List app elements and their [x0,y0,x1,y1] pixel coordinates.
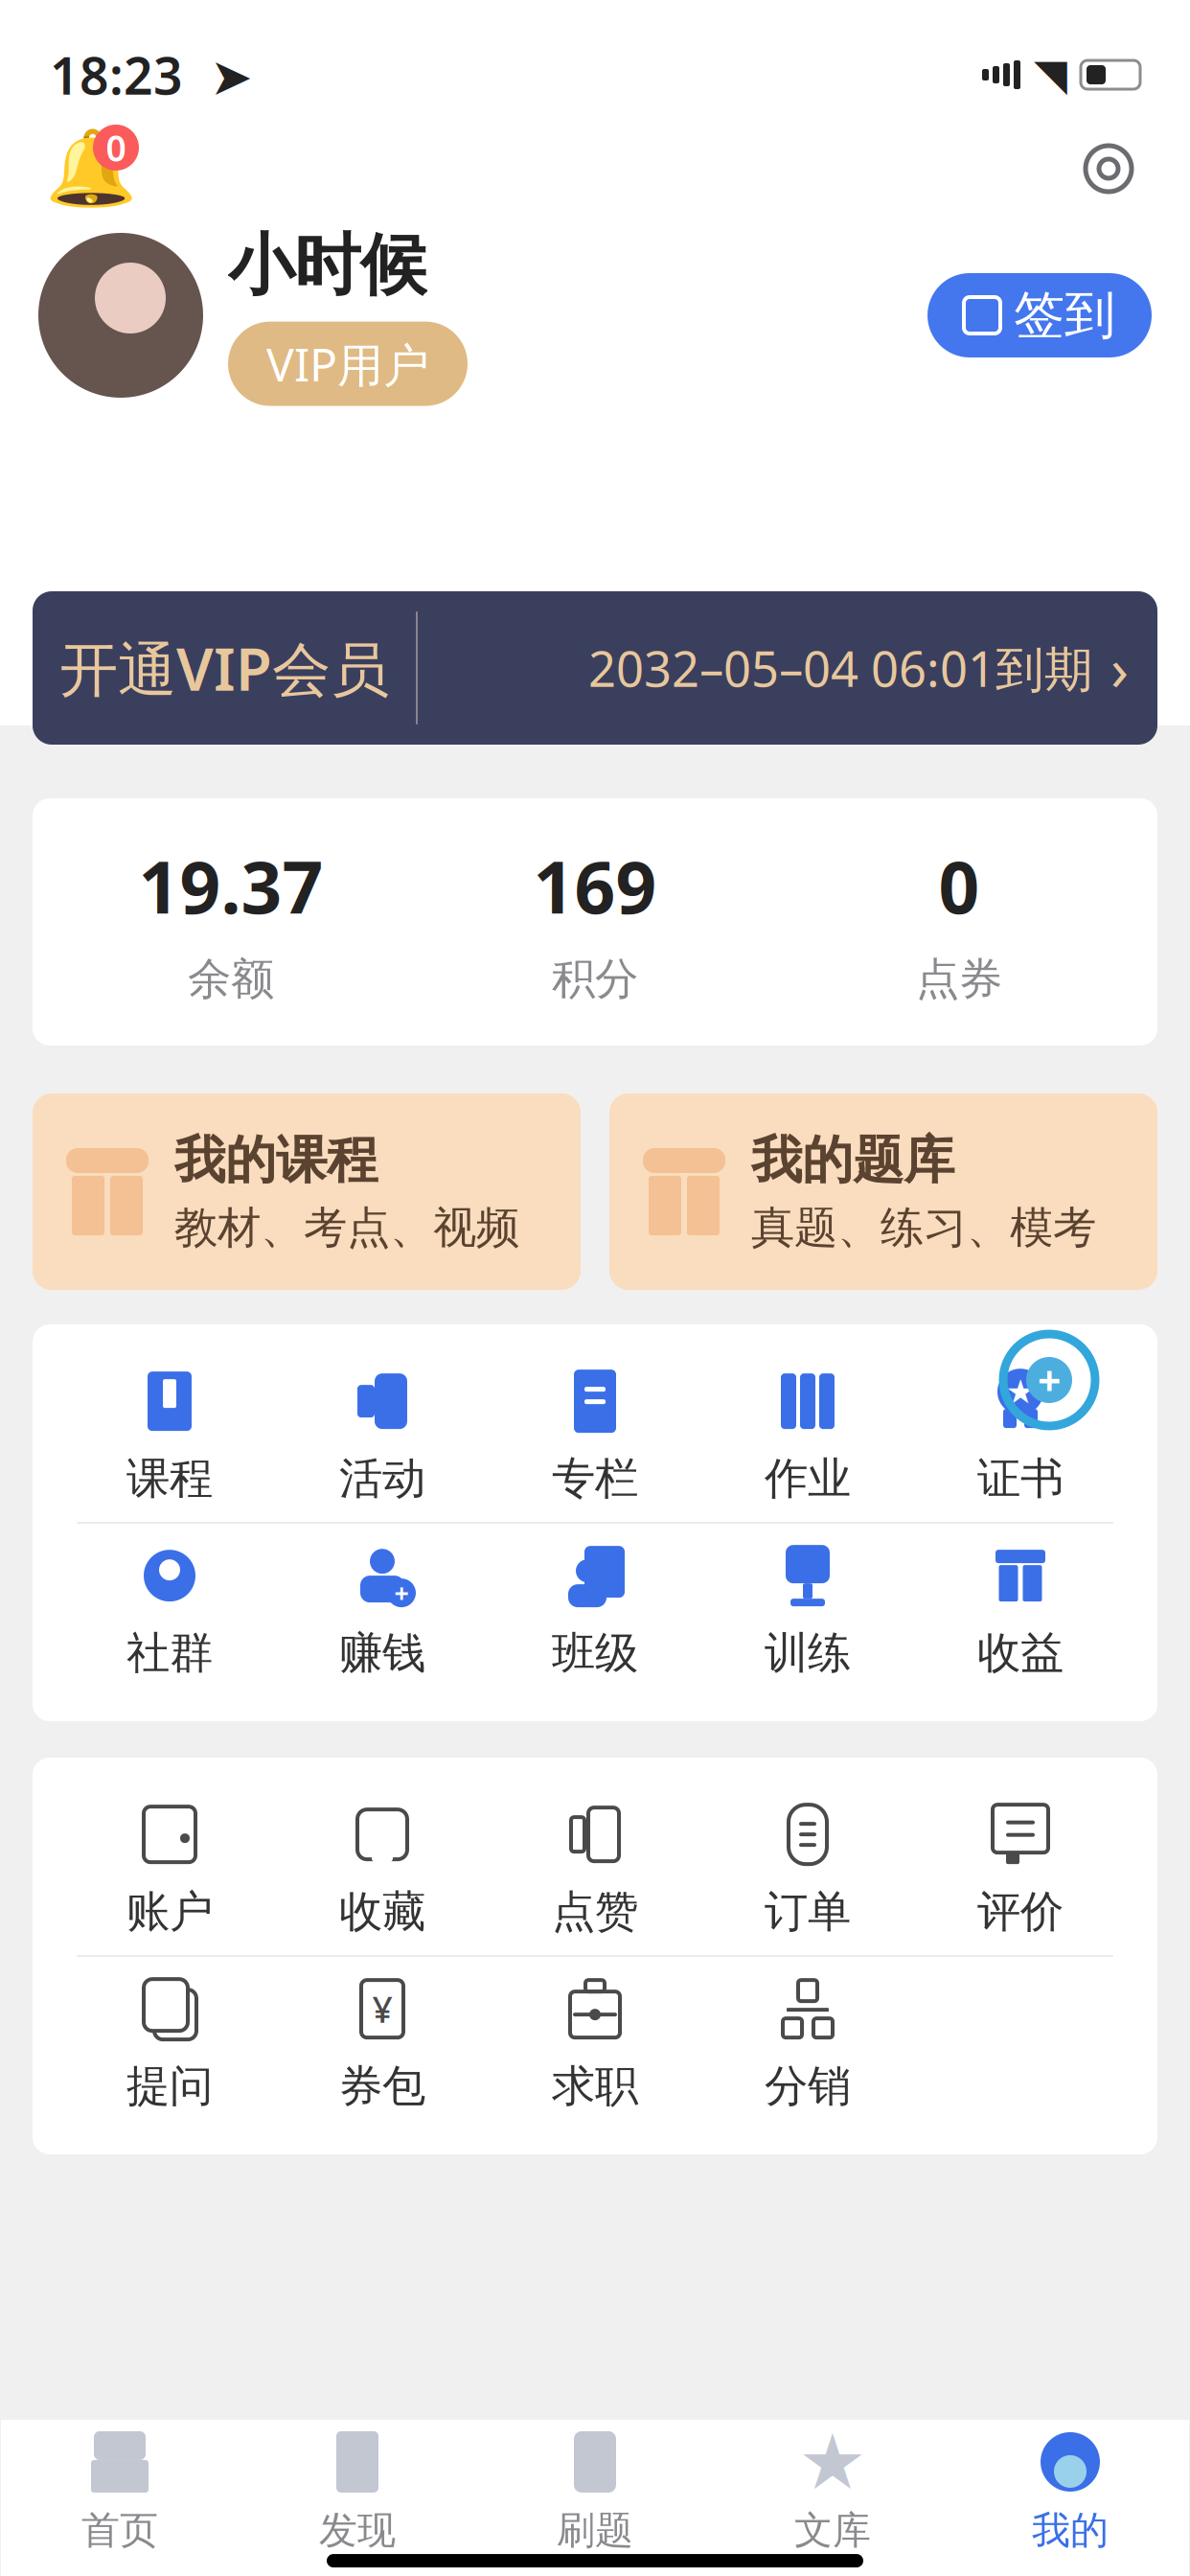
button[interactable]: 开通VIP会员 [33,591,1157,745]
button[interactable]: 0 [777,836,1141,1008]
button[interactable]: 首页 [1,2428,239,2554]
button[interactable]: 19.37 [49,836,413,1008]
button[interactable]: 发现 [239,2428,476,2554]
staticText: 专栏 [552,1452,638,1505]
staticText: ★ [1006,1373,1035,1410]
staticText: 文库 [794,2507,871,2554]
staticText: 活动 [339,1452,425,1505]
button[interactable]: 我的 [951,2428,1189,2554]
staticText: 提问 [126,2060,213,2113]
staticText: + [394,1576,409,1610]
button[interactable]: 刷题 [476,2428,714,2554]
staticText: 小时候 [228,225,426,306]
staticText: ◥ [1034,50,1067,99]
button[interactable]: 课程 [63,1349,276,1522]
button[interactable]: 我的题库 [609,1093,1157,1290]
staticText: 收藏 [339,1885,425,1939]
staticText: 点赞 [552,1885,638,1939]
button[interactable]: 训练 [701,1524,914,1696]
button[interactable]: 收益 [914,1524,1127,1696]
staticText: 余额 [188,952,274,1006]
button[interactable]: 账户 [63,1782,276,1955]
staticText: 订单 [765,1885,851,1939]
staticText: 训练 [765,1626,851,1680]
staticText: 分销 [765,2060,851,2113]
button[interactable]: 收藏 [276,1782,489,1955]
staticText: 我的课程 [174,1129,378,1192]
button[interactable]: ★ [714,2428,951,2554]
staticText: 签到 [1014,284,1115,347]
staticText: 券包 [339,2060,425,2113]
staticText: 教材、考点、视频 [174,1201,519,1255]
button[interactable]: Settings [1065,126,1152,212]
staticText: 我的题库 [751,1129,954,1192]
staticText: 我的 [1032,2507,1109,2554]
staticText: 班级 [552,1626,638,1680]
staticText: 0 [106,124,126,171]
staticText: 点券 [916,952,1002,1006]
button[interactable]: ★ [914,1349,1127,1522]
staticText: 开通VIP会员 [59,629,389,707]
staticText: 🔔 [45,126,137,211]
staticText: 发现 [319,2507,396,2554]
staticText: 真题、练习、模考 [751,1201,1096,1255]
button[interactable]: 订单 [701,1782,914,1955]
staticText: 评价 [977,1885,1064,1939]
button[interactable]: 我的课程 [33,1093,581,1290]
staticText: ¥ [372,1985,392,2033]
staticText: 作业 [765,1452,851,1505]
staticText: 19.37 [138,838,323,933]
button[interactable]: ¥ [276,1957,489,2129]
staticText: 社群 [126,1626,213,1680]
staticText: 0 [938,838,980,933]
button[interactable]: 点赞 [489,1782,701,1955]
staticText: VIP用户 [266,333,429,394]
staticText: + [1038,1353,1061,1407]
staticText: 18:23 ➤ [50,41,253,109]
staticText: › [1110,629,1129,707]
button[interactable]: 求职 [489,1957,701,2129]
staticText: 首页 [81,2507,158,2554]
button[interactable]: Profile photo [38,233,203,398]
staticText: 课程 [126,1452,213,1505]
staticText: 收益 [977,1626,1064,1680]
button[interactable]: VIP用户 [228,322,468,406]
staticText: 账户 [126,1885,213,1939]
button[interactable]: 活动 [276,1349,489,1522]
staticText: 刷题 [557,2507,633,2554]
staticText: 赚钱 [339,1626,425,1680]
staticText: 2032–05–04 06:01到期 [588,636,1093,700]
button[interactable]: 专栏 [489,1349,701,1522]
staticText: 证书 [977,1452,1064,1505]
staticText: 积分 [552,952,638,1006]
button[interactable]: 作业 [701,1349,914,1522]
staticText: 169 [533,838,657,933]
button[interactable]: 分销 [701,1957,914,2129]
button[interactable]: 社群 [63,1524,276,1696]
button[interactable]: 169 [413,836,777,1008]
button[interactable]: + [276,1524,489,1696]
button[interactable]: 班级 [489,1524,701,1696]
button[interactable]: 评价 [914,1782,1127,1955]
staticText: ★ [798,2418,867,2505]
button[interactable]: 提问 [63,1957,276,2129]
staticText: 求职 [552,2060,638,2113]
button[interactable]: Notifications [38,126,144,212]
button[interactable]: 签到 [927,273,1152,357]
